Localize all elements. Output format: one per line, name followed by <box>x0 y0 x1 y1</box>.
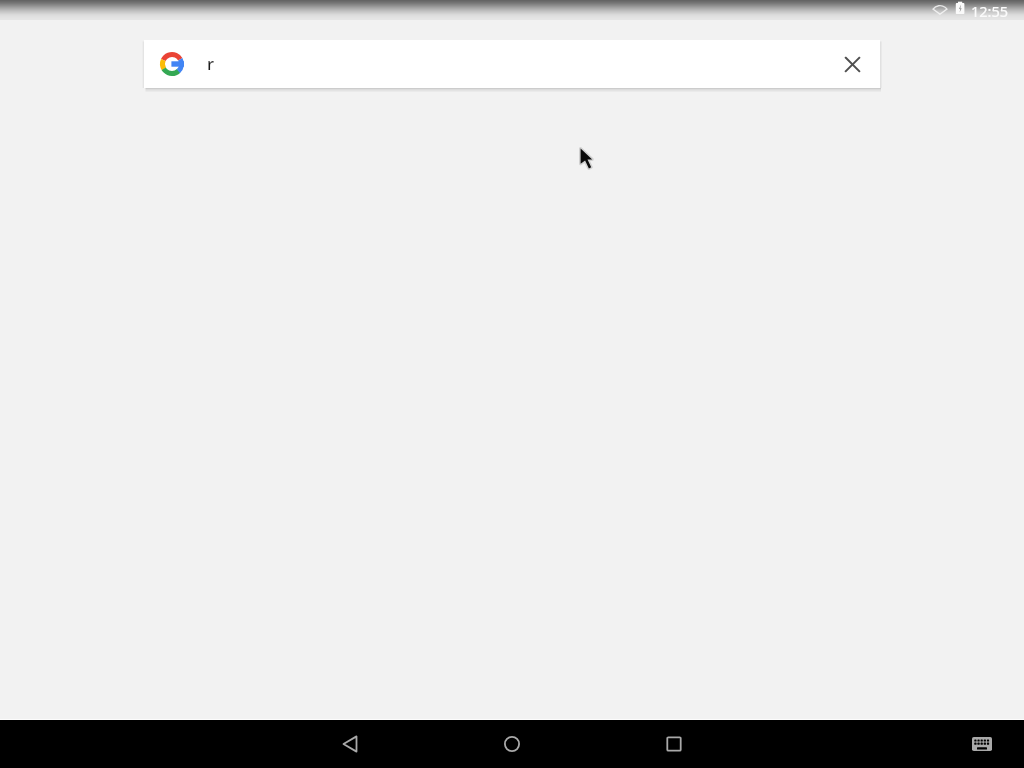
button[interactable]: Clear <box>840 52 864 76</box>
button[interactable]: Home <box>488 720 536 768</box>
staticText: r <box>207 52 214 74</box>
staticText: 12:55 <box>971 1 1009 21</box>
button[interactable]: Recents <box>650 720 698 768</box>
button[interactable]: Back <box>326 720 374 768</box>
button[interactable]: r <box>144 40 880 88</box>
button[interactable]: Show keyboard <box>958 720 1006 768</box>
